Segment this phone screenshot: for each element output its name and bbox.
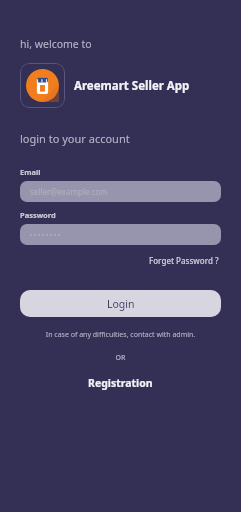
staticText: Registration bbox=[88, 376, 153, 390]
staticText: Login bbox=[107, 297, 135, 311]
button[interactable]: Forget Password ? bbox=[147, 253, 221, 268]
button[interactable]: seller@example.com bbox=[20, 181, 221, 202]
staticText: Password bbox=[20, 210, 56, 220]
staticText: login to your account bbox=[20, 131, 130, 146]
staticText: Areemart Seller App bbox=[74, 78, 190, 94]
staticText: Email bbox=[20, 167, 41, 177]
staticText: OR bbox=[20, 353, 221, 363]
button[interactable] bbox=[20, 224, 221, 245]
staticText: hi, welcome to bbox=[20, 37, 92, 51]
staticText: seller@example.com bbox=[30, 186, 108, 197]
staticText: In case of any difficulties, contact wit… bbox=[20, 330, 221, 340]
button[interactable]: Login bbox=[20, 290, 221, 317]
button[interactable]: Registration bbox=[82, 373, 159, 393]
staticText: Forget Password ? bbox=[149, 255, 219, 266]
